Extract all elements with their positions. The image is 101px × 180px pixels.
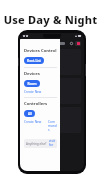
button[interactable]: Room bbox=[24, 80, 40, 87]
button[interactable] bbox=[23, 107, 81, 133]
staticText: Root-List bbox=[27, 59, 41, 63]
button[interactable]: Help bbox=[69, 41, 73, 45]
staticText: Create New bbox=[24, 120, 42, 124]
staticText: Create New bbox=[24, 90, 42, 94]
button[interactable]: Create New bbox=[24, 90, 42, 94]
button[interactable]: Anything else? bbox=[24, 139, 57, 148]
button[interactable]: Root-List bbox=[24, 57, 44, 64]
staticText: All bbox=[28, 112, 32, 116]
button[interactable] bbox=[23, 78, 81, 104]
button[interactable]: All bbox=[24, 110, 35, 117]
staticText: Devices Control bbox=[24, 48, 57, 54]
button[interactable]: Commands bbox=[48, 120, 57, 132]
staticText: Controllers bbox=[24, 101, 48, 107]
staticText: Commands bbox=[48, 120, 57, 132]
staticText: visit forum bbox=[49, 139, 55, 148]
button[interactable]: Room settings bbox=[51, 42, 65, 45]
button[interactable] bbox=[23, 49, 81, 75]
staticText: Devices bbox=[24, 71, 40, 77]
button[interactable]: Record bbox=[75, 41, 81, 46]
staticText: Use Day & Night bbox=[0, 12, 101, 27]
staticText: Anything else? bbox=[26, 142, 47, 146]
staticText: Room bbox=[27, 82, 37, 86]
button[interactable]: Create New bbox=[24, 120, 42, 124]
